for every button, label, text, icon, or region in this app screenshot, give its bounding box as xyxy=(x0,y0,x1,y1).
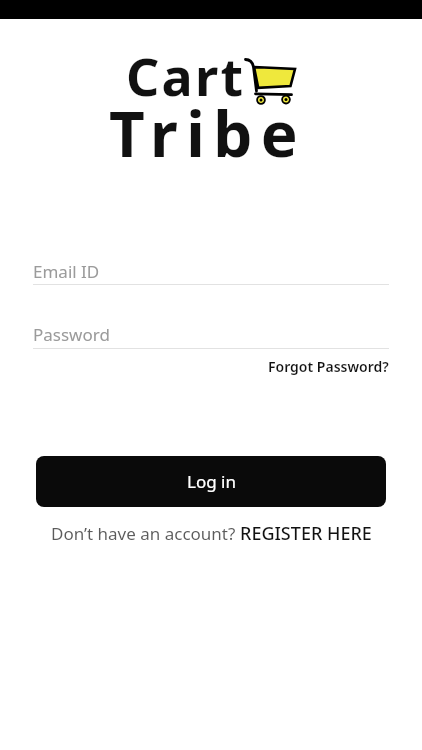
button[interactable]: Log in xyxy=(36,456,386,507)
staticText: Password xyxy=(33,323,110,346)
staticText: Log in xyxy=(187,470,236,493)
staticText: Email ID xyxy=(33,260,100,283)
button[interactable]: Forgot Password? xyxy=(268,357,389,376)
staticText: Cart xyxy=(126,40,246,111)
staticText: REGISTER HERE xyxy=(240,521,372,546)
staticText: Don’t have an account? xyxy=(51,522,240,545)
staticText: Tribe xyxy=(109,91,307,175)
button[interactable]: Don’t have an account? xyxy=(0,521,422,546)
